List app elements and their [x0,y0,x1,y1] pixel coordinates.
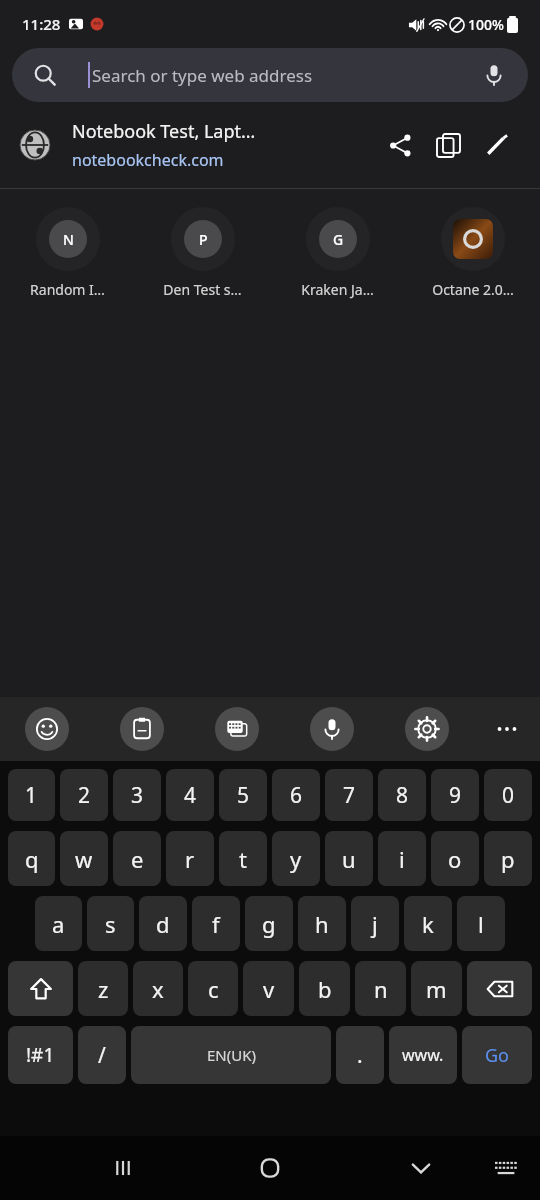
staticText: !#1 [26,1042,55,1068]
staticText: v [263,974,275,1004]
button[interactable]: EN(UK) [131,1026,331,1084]
button[interactable]: 3 [113,769,161,821]
staticText: Random I… [30,280,105,299]
button[interactable]: !#1 [8,1026,73,1084]
button[interactable]: h [298,896,346,951]
button[interactable]: 4 [166,769,214,821]
button[interactable]: c [188,961,238,1016]
staticText: N [63,230,74,249]
button[interactable]: www. [389,1026,457,1084]
staticText: 8 [396,781,409,810]
button[interactable]: a [35,896,82,951]
button[interactable]: g [245,896,293,951]
button[interactable]: f [192,896,240,951]
button[interactable]: 2 [60,769,108,821]
staticText: o [448,844,462,874]
staticText: G [333,230,344,249]
staticText: www. [402,1044,444,1066]
button[interactable]: x [133,961,183,1016]
staticText: notebookcheck.com [72,149,224,171]
staticText: Go [485,1043,509,1068]
staticText: 3 [131,781,144,810]
staticText: e [131,844,144,874]
button[interactable]: Notebook Test, Lapt… [0,102,540,188]
staticText: 11:28 [22,14,61,34]
button[interactable]: P [135,207,270,299]
button[interactable]: G [270,207,405,299]
button[interactable]: . [336,1026,384,1084]
staticText: Den Test s… [163,280,242,299]
button[interactable]: m [411,961,462,1016]
button[interactable]: 1 [8,769,55,821]
button[interactable]: s [87,896,134,951]
staticText: Kraken Ja… [301,280,374,299]
button[interactable]: q [8,831,55,886]
button[interactable]: v [243,961,294,1016]
button[interactable]: r [166,831,214,886]
staticText: 0 [502,781,515,810]
staticText: x [152,974,164,1004]
button[interactable]: Change keyboard [483,1136,529,1200]
staticText: Notebook Test, Lapt… [72,119,256,144]
button[interactable]: 7 [325,769,373,821]
button[interactable]: w [60,831,108,886]
staticText: 2 [78,781,91,810]
button[interactable]: Settings [405,707,449,751]
button[interactable]: Emoji [25,707,69,751]
button[interactable]: Open in new tab [424,121,472,169]
button[interactable]: n [355,961,406,1016]
staticText: m [426,974,447,1004]
button[interactable]: Voice input [310,707,354,751]
button[interactable]: 6 [272,769,320,821]
button[interactable]: Home [242,1136,298,1200]
button[interactable]: More options [485,707,529,751]
button[interactable]: p [484,831,532,886]
button[interactable]: 8 [378,769,426,821]
button[interactable]: y [272,831,320,886]
button[interactable]: i [378,831,426,886]
button[interactable]: Keyboard modes [215,707,259,751]
button[interactable]: Hide keyboard [396,1136,446,1200]
button[interactable]: o [431,831,479,886]
button[interactable]: u [325,831,373,886]
button[interactable]: 9 [431,769,479,821]
button[interactable]: 0 [484,769,532,821]
staticText: l [478,909,484,939]
button[interactable] [8,961,73,1016]
button[interactable]: Share [376,121,424,169]
staticText: 5 [237,781,250,810]
staticText: j [372,909,378,939]
staticText: q [25,844,39,874]
button[interactable]: e [113,831,161,886]
button[interactable]: j [351,896,399,951]
button[interactable]: Edit query [472,121,520,169]
staticText: f [212,909,220,939]
button[interactable]: Go [462,1026,532,1084]
button[interactable]: N [0,207,135,299]
staticText: c [208,974,219,1004]
staticText: 9 [449,781,462,810]
staticText: t [239,844,247,874]
button[interactable]: Recents [98,1136,148,1200]
button[interactable]: t [219,831,267,886]
staticText: 4 [184,781,197,810]
button[interactable]: Backspace [467,961,532,1016]
button[interactable]: / [78,1026,126,1084]
staticText: z [98,974,109,1004]
staticText: k [422,909,434,939]
button[interactable]: d [139,896,187,951]
button[interactable]: 5 [219,769,267,821]
staticText: d [156,909,170,939]
button[interactable]: z [78,961,128,1016]
button[interactable]: Octane 2.0… [405,207,540,299]
button[interactable]: Voice search [474,55,514,95]
button[interactable]: l [457,896,505,951]
button[interactable]: Search or type web address [12,48,528,102]
staticText: h [315,909,329,939]
staticText: i [399,844,405,874]
staticText: u [342,844,356,874]
staticText: Octane 2.0… [432,280,514,299]
button[interactable]: k [404,896,452,951]
button[interactable]: b [299,961,350,1016]
button[interactable]: Clipboard [120,707,164,751]
